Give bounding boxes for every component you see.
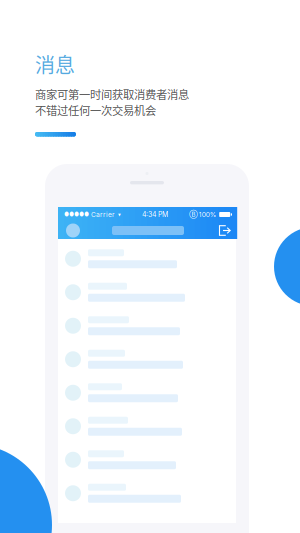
staticText: ▾ [118, 211, 121, 218]
staticText: 商家可第一时间获取消费者消息 [35, 86, 189, 102]
staticText: 消息 [35, 49, 75, 78]
staticText: 4:34 PM [142, 210, 168, 219]
staticText: Ⓑ [189, 211, 197, 218]
staticText: 不错过任何一次交易机会 [35, 102, 156, 118]
staticText: 100% [199, 210, 217, 219]
staticText: ●●●●● [64, 211, 89, 218]
staticText: Carrier [91, 210, 115, 219]
